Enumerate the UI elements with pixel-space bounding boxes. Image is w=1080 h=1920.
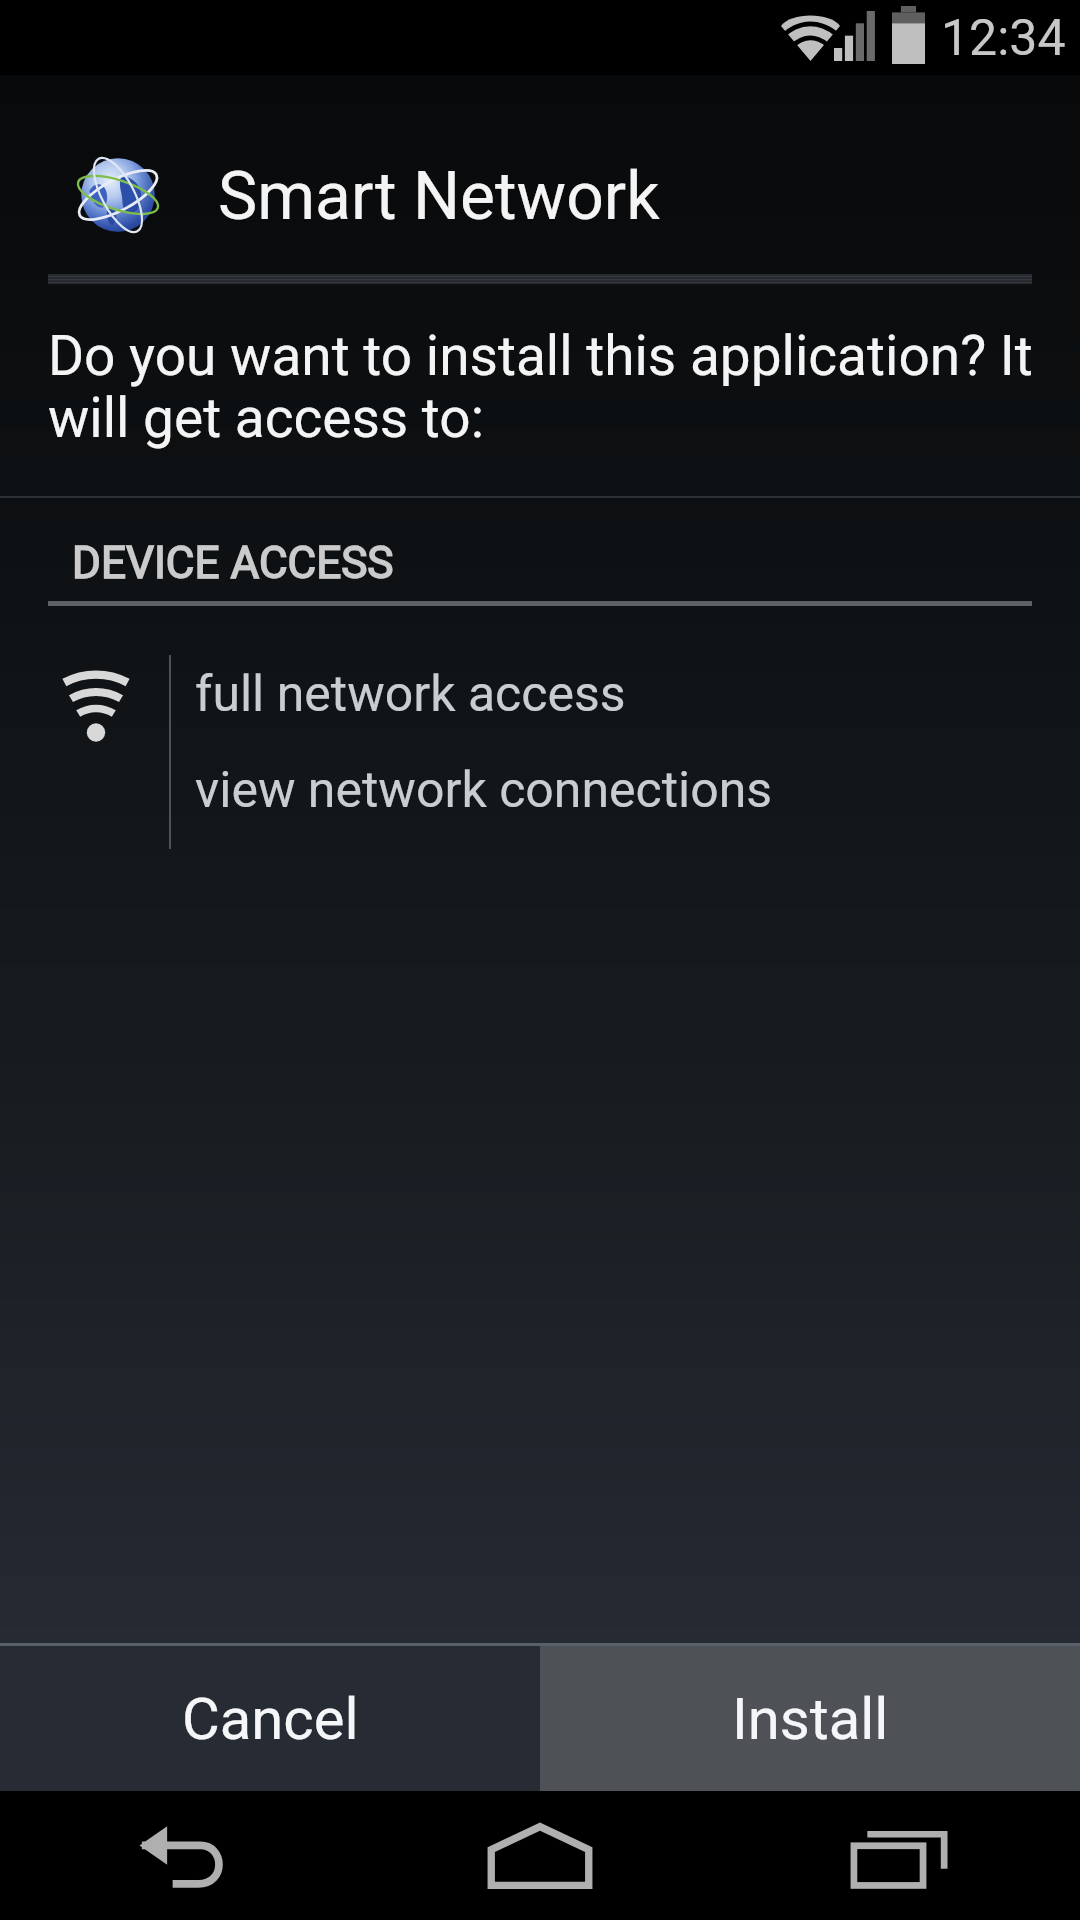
button[interactable]: Cancel [0, 1646, 540, 1791]
staticText: 12:34 [941, 9, 1066, 68]
staticText: Smart Network [218, 158, 660, 235]
staticText: Do you want to install this application?… [48, 324, 1038, 451]
staticText: view network connections [195, 761, 773, 820]
staticText: Install [732, 1685, 889, 1753]
staticText: Cancel [182, 1685, 359, 1753]
staticText: full network access [195, 665, 626, 724]
button[interactable]: Back [95, 1791, 265, 1920]
staticText: DEVICE ACCESS [72, 537, 394, 589]
button[interactable]: Install [540, 1646, 1080, 1791]
button[interactable]: Recent apps [815, 1791, 985, 1920]
button[interactable]: Home [455, 1791, 625, 1920]
